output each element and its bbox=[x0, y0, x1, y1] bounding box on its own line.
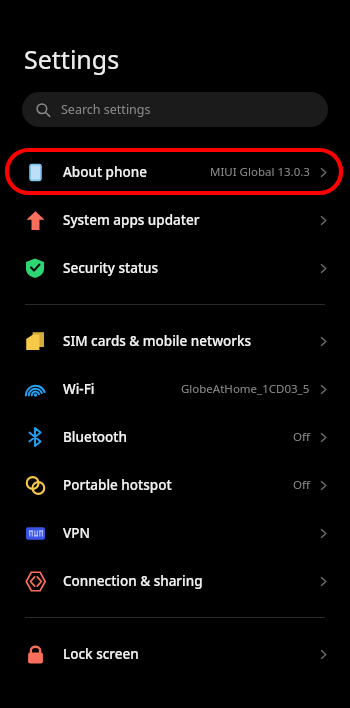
staticText: Lock screen bbox=[63, 645, 139, 663]
staticText: GlobeAtHome_1CD03_5 bbox=[181, 381, 310, 397]
staticText: Settings bbox=[24, 42, 120, 76]
button[interactable]: Bluetooth bbox=[0, 413, 350, 461]
staticText: VPN bbox=[63, 524, 91, 542]
button[interactable]: SIM cards & mobile networks bbox=[0, 317, 350, 365]
button[interactable]: Lock screen bbox=[0, 630, 350, 678]
button[interactable]: System apps updater bbox=[0, 196, 350, 244]
staticText: Portable hotspot bbox=[63, 476, 172, 494]
staticText: System apps updater bbox=[63, 211, 200, 229]
staticText: About phone bbox=[63, 163, 147, 181]
staticText: Security status bbox=[63, 259, 159, 277]
button[interactable]: About phone bbox=[0, 148, 350, 196]
staticText: MIUI Global 13.0.3 bbox=[210, 164, 310, 180]
button[interactable]: Search settings bbox=[22, 92, 328, 127]
button[interactable]: VPN bbox=[0, 509, 350, 557]
staticText: SIM cards & mobile networks bbox=[63, 332, 252, 350]
staticText: Wi-Fi bbox=[63, 380, 95, 398]
staticText: Search settings bbox=[61, 101, 151, 118]
button[interactable]: Security status bbox=[0, 244, 350, 292]
staticText: Connection & sharing bbox=[63, 572, 203, 590]
staticText: Off bbox=[293, 429, 310, 445]
button[interactable]: Portable hotspot bbox=[0, 461, 350, 509]
button[interactable]: Connection & sharing bbox=[0, 557, 350, 605]
staticText: Off bbox=[293, 477, 310, 493]
button[interactable]: Wi-Fi bbox=[0, 365, 350, 413]
staticText: Bluetooth bbox=[63, 428, 127, 446]
